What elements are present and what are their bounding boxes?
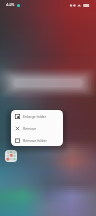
staticText: 4:25 [6, 2, 15, 8]
button[interactable]: Remove [11, 122, 63, 134]
button[interactable]: Enlarge folder [11, 110, 63, 122]
staticText: Enlarge folder [23, 114, 47, 119]
staticText: Remove folder [23, 138, 47, 143]
button[interactable]: Remove folder [11, 134, 63, 146]
button[interactable]: App folder [5, 150, 17, 162]
staticText: Remove [23, 126, 37, 131]
